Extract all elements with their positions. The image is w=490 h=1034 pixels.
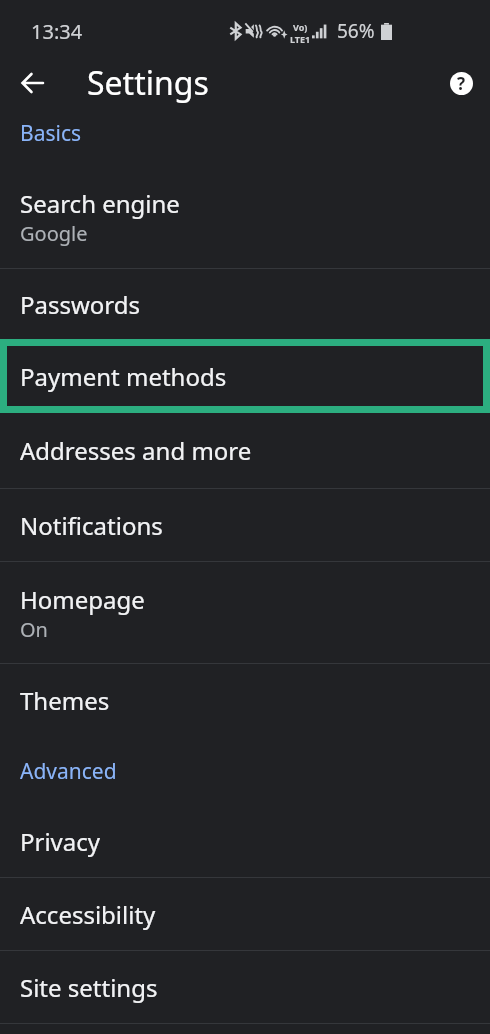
staticText: 13:34	[31, 18, 83, 45]
staticText: Notifications	[20, 509, 163, 542]
staticText: Site settings	[20, 971, 158, 1004]
button[interactable]: Back	[9, 59, 57, 107]
button[interactable]: Notifications	[0, 489, 490, 561]
button[interactable]: Addresses and more	[0, 413, 490, 488]
staticText: 56%	[337, 18, 375, 44]
button[interactable]: Accessibility	[0, 878, 490, 950]
staticText: Vo)	[293, 21, 308, 33]
staticText: Search engine	[20, 187, 180, 220]
button[interactable]: Homepage	[0, 562, 490, 663]
staticText: ?	[457, 72, 466, 95]
staticText: Advanced	[20, 757, 117, 786]
staticText: Basics	[20, 119, 82, 148]
button[interactable]: Site settings	[0, 951, 490, 1023]
button[interactable]: Themes	[0, 664, 490, 736]
button[interactable]: Privacy	[0, 806, 490, 877]
staticText: Privacy	[20, 825, 101, 858]
staticText: Accessibility	[20, 898, 156, 931]
staticText: Payment methods	[20, 360, 227, 393]
button[interactable]: Search engine	[0, 152, 490, 268]
staticText: Themes	[20, 684, 110, 717]
staticText: Addresses and more	[20, 434, 252, 467]
button[interactable]: Passwords	[0, 269, 490, 339]
staticText: Settings	[87, 61, 209, 105]
staticText: On	[20, 616, 48, 643]
staticText: Passwords	[20, 288, 141, 321]
staticText: Google	[20, 220, 88, 247]
button[interactable]: Help	[439, 61, 483, 105]
staticText: Homepage	[20, 583, 145, 616]
staticText: LTE1	[290, 33, 311, 43]
button[interactable]: Payment methods	[0, 339, 490, 413]
